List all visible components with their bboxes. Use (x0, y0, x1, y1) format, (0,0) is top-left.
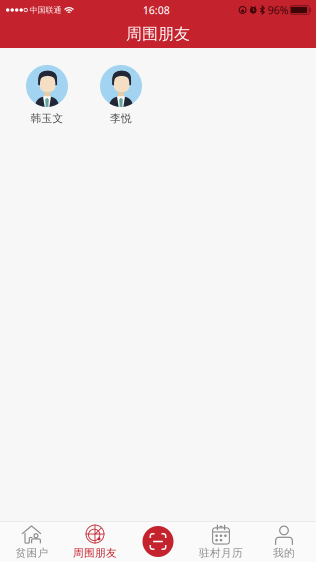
staticText: 16:08 (143, 3, 170, 17)
staticText: 周围朋友 (73, 546, 117, 559)
staticText: 韩玉文 (30, 112, 63, 125)
staticText: 贫困户 (15, 546, 48, 559)
button[interactable]: 李悦 (84, 64, 158, 126)
staticText: 96% (268, 3, 289, 17)
button[interactable]: 扫一扫 (126, 521, 189, 562)
button[interactable]: 驻村月历 (189, 521, 252, 562)
staticText: 我的 (273, 546, 295, 559)
staticText: 驻村月历 (199, 546, 243, 559)
button[interactable]: 我的 (252, 521, 315, 562)
staticText: 中国联通 (29, 5, 61, 15)
staticText: 周围朋友 (126, 24, 190, 44)
button[interactable]: 韩玉文 (10, 64, 84, 126)
button[interactable]: 周围朋友 (63, 521, 126, 562)
staticText: 李悦 (110, 112, 132, 125)
button[interactable]: 贫困户 (0, 521, 63, 562)
